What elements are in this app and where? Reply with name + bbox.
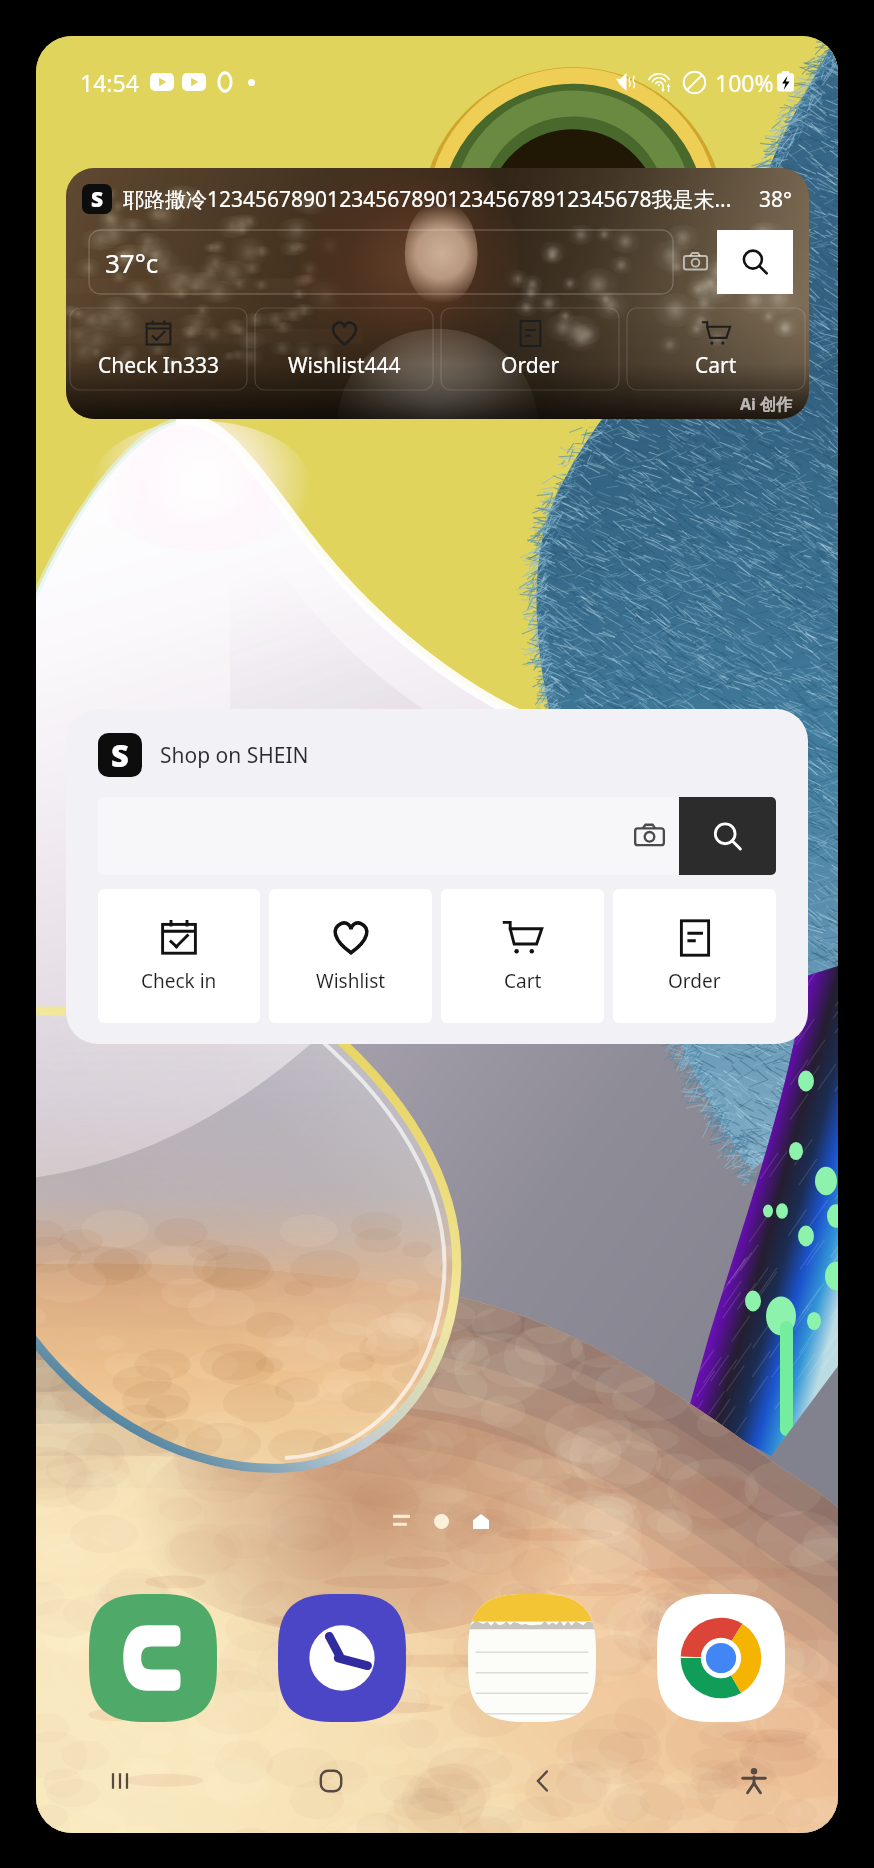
- button[interactable]: Search: [679, 797, 776, 875]
- button[interactable]: Order: [441, 308, 619, 390]
- staticText: Cart: [695, 351, 737, 380]
- button[interactable]: Wishlist: [269, 889, 432, 1023]
- button[interactable]: S: [66, 709, 808, 1044]
- button[interactable]: Home page: [468, 1508, 494, 1534]
- button[interactable]: Home: [299, 1749, 363, 1813]
- button[interactable]: Notes: [468, 1594, 596, 1722]
- button[interactable]: Image search: [673, 230, 717, 294]
- button[interactable]: Wishlist444: [255, 308, 433, 390]
- button[interactable]: Check In333: [70, 308, 247, 390]
- staticText: 耶路撒冷123456789012345678901234567891234567…: [123, 185, 753, 214]
- button[interactable]: Phone: [89, 1594, 217, 1722]
- button[interactable]: Back: [511, 1749, 575, 1813]
- staticText: S: [91, 185, 104, 214]
- button[interactable]: Page 2: [428, 1508, 454, 1534]
- staticText: Check in: [141, 968, 217, 994]
- staticText: Cart: [504, 968, 542, 994]
- staticText: 100%: [715, 67, 774, 98]
- button[interactable]: Chrome: [657, 1594, 785, 1722]
- button[interactable]: Image search: [619, 797, 679, 875]
- button[interactable]: Cart: [441, 889, 604, 1023]
- staticText: S: [111, 734, 129, 776]
- button[interactable]: S: [66, 168, 809, 419]
- button[interactable]: Cart: [627, 308, 805, 390]
- button[interactable]: 37°c: [89, 230, 673, 294]
- staticText: Wishlist: [316, 968, 386, 994]
- button[interactable]: Order: [613, 889, 776, 1023]
- staticText: 38°: [759, 185, 793, 214]
- staticText: Check In333: [98, 351, 219, 380]
- staticText: Ai 创作: [740, 393, 793, 415]
- button[interactable]: Clock: [278, 1594, 406, 1722]
- button[interactable]: App list page: [388, 1508, 414, 1534]
- staticText: 37°c: [105, 245, 159, 280]
- button[interactable]: Check in: [98, 889, 260, 1023]
- staticText: Order: [668, 968, 721, 994]
- staticText: Order: [501, 351, 560, 380]
- staticText: Wishlist444: [288, 351, 401, 380]
- button[interactable]: Recent apps: [88, 1749, 152, 1813]
- staticText: Shop on SHEIN: [160, 741, 309, 770]
- staticText: 14:54: [80, 67, 139, 98]
- button[interactable]: Search: [717, 230, 793, 294]
- button[interactable]: Accessibility: [722, 1749, 786, 1813]
